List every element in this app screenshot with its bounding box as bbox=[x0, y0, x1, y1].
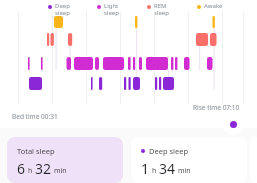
staticText: Deep sleep bbox=[55, 2, 70, 17]
button[interactable]: Deep sleep bbox=[48, 2, 97, 17]
staticText: Awake bbox=[204, 2, 223, 10]
staticText: REM sleep bbox=[154, 2, 169, 17]
staticText: h bbox=[152, 166, 157, 176]
staticText: Rise time 07:10 bbox=[193, 103, 240, 112]
staticText: 32 bbox=[35, 159, 52, 178]
button[interactable]: Sleep details bbox=[222, 113, 244, 135]
button[interactable]: Light sleep bbox=[97, 2, 147, 17]
button[interactable]: Total sleep bbox=[7, 137, 123, 183]
staticText: min bbox=[178, 166, 191, 176]
staticText: Light sleep bbox=[104, 2, 119, 17]
button[interactable]: Sleep stages chart bbox=[0, 0, 257, 128]
staticText: 1 bbox=[141, 159, 150, 178]
staticText: 34 bbox=[159, 159, 176, 178]
staticText: min bbox=[54, 166, 67, 176]
button[interactable]: Deep sleep bbox=[131, 137, 247, 183]
button[interactable]: REM sleep bbox=[147, 2, 197, 17]
staticText: h bbox=[28, 166, 33, 176]
staticText: Total sleep bbox=[17, 146, 55, 156]
staticText: 6 bbox=[17, 159, 26, 178]
button[interactable]: Awake bbox=[197, 2, 247, 10]
staticText: Deep sleep bbox=[149, 146, 189, 156]
staticText: Bed time 00:31 bbox=[12, 112, 58, 121]
